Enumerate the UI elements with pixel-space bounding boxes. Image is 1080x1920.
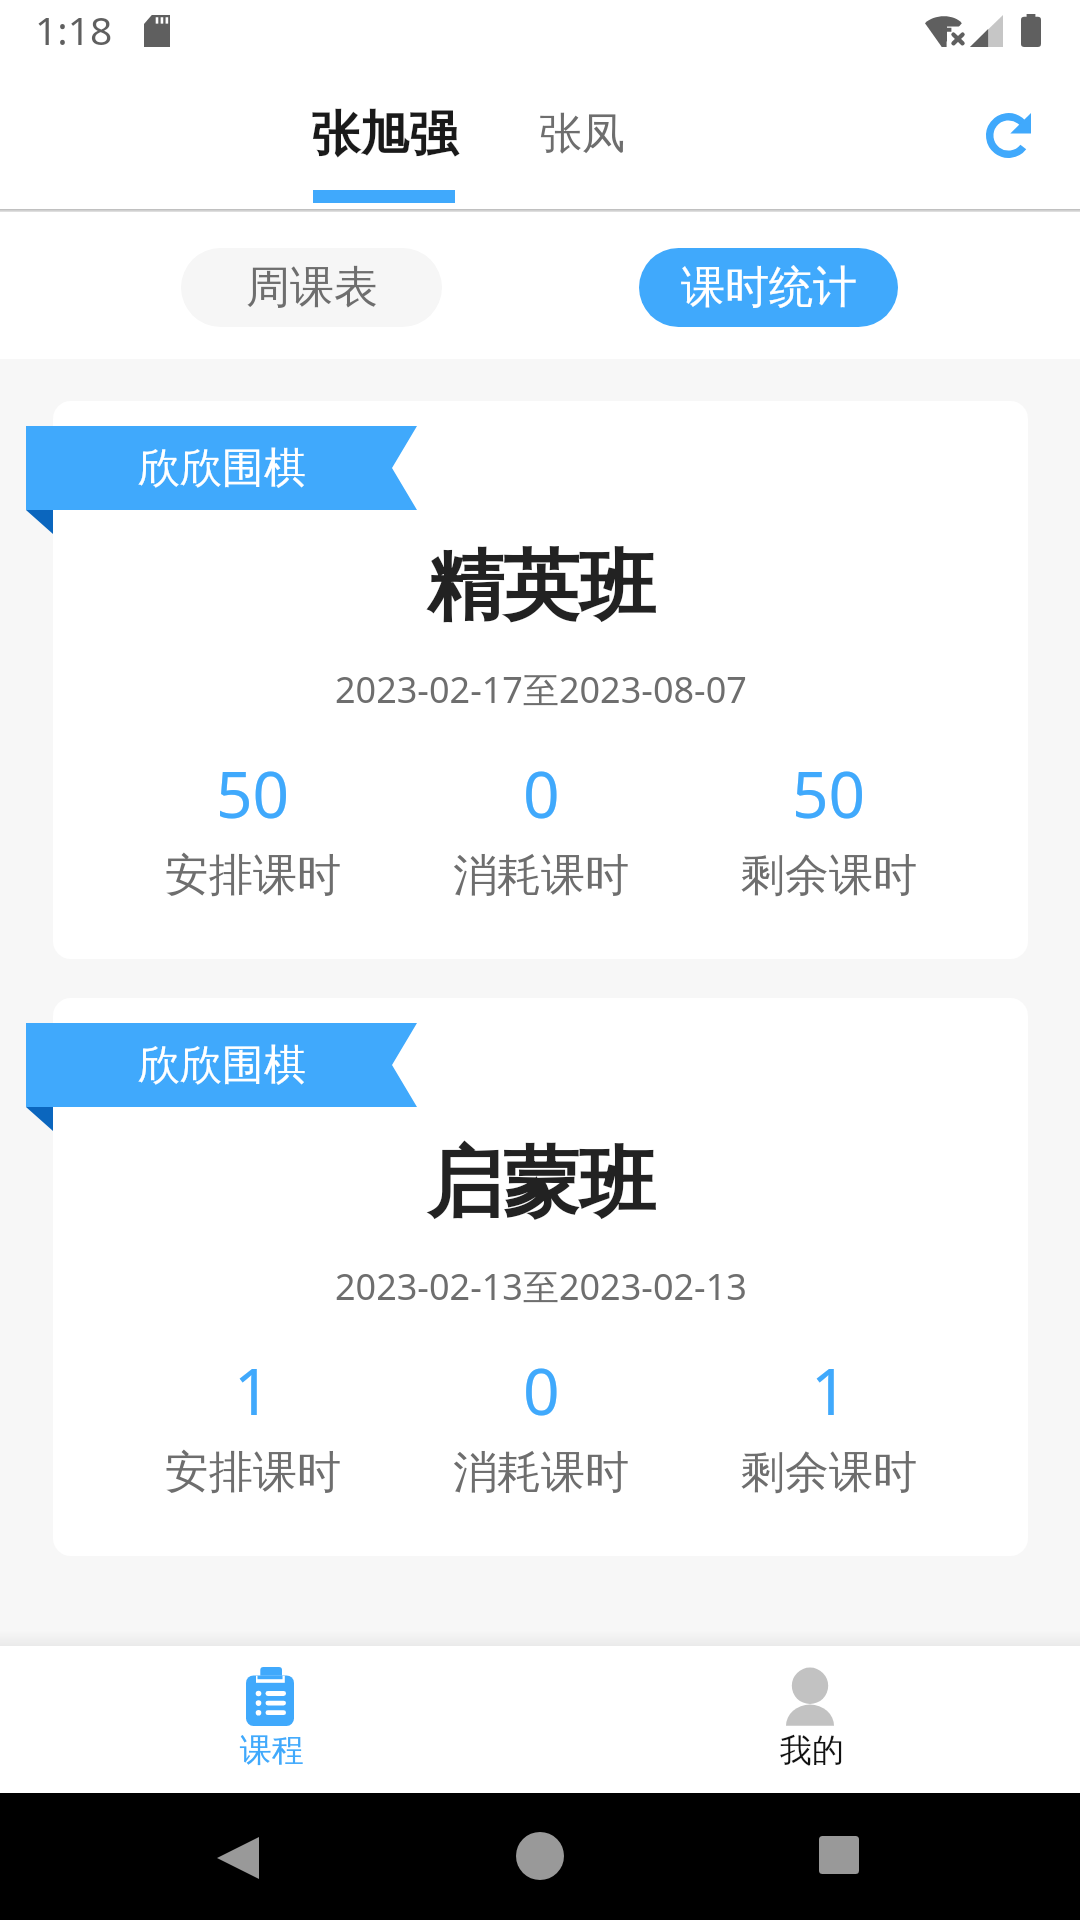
staticText: 1 [811,1347,848,1434]
staticText: 安排课时 [165,1445,341,1500]
staticText: 课程 [240,1730,304,1770]
staticText: 50 [216,750,290,837]
staticText: 消耗课时 [453,848,629,903]
staticText: 2023-02-13至2023-02-13 [335,1262,747,1311]
staticText: 启蒙班 [427,1136,655,1232]
button[interactable]: 精英班 [53,401,1028,959]
staticText: 50 [792,750,866,837]
button[interactable]: Back [197,1817,279,1899]
button[interactable]: Recents [798,1814,880,1896]
staticText: 周课表 [246,260,378,315]
staticText: 我的 [780,1730,844,1770]
staticText: 剩余课时 [741,1445,917,1500]
button[interactable]: Refresh [970,97,1046,173]
staticText: 张旭强 [311,104,458,166]
staticText: 欣欣围棋 [138,1039,306,1092]
button[interactable]: 我的 [540,1646,1080,1793]
staticText: 消耗课时 [453,1445,629,1500]
staticText: 2023-02-17至2023-08-07 [335,665,747,714]
staticText: 1 [234,1347,271,1434]
staticText: 0 [523,1347,560,1434]
button[interactable]: 课时统计 [639,248,898,327]
staticText: 精英班 [427,539,655,635]
button[interactable]: 张旭强 [276,74,492,208]
staticText: 安排课时 [165,848,341,903]
staticText: 1:18 [35,3,113,56]
staticText: 0 [523,750,560,837]
staticText: 剩余课时 [741,848,917,903]
button[interactable]: 周课表 [181,248,442,327]
staticText: 课时统计 [681,260,857,315]
button[interactable]: 启蒙班 [53,998,1028,1556]
button[interactable]: Home [499,1815,581,1897]
staticText: 张凤 [539,107,625,161]
button[interactable]: 课程 [0,1646,540,1793]
button[interactable]: 张凤 [502,74,662,208]
staticText: 欣欣围棋 [138,442,306,495]
